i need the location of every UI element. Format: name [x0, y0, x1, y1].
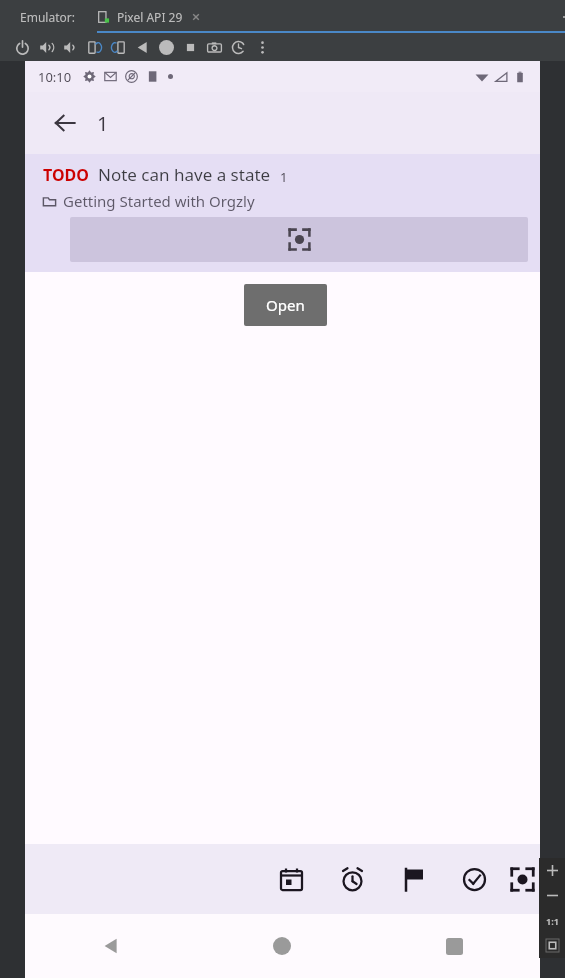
- staticText: TODO: [43, 164, 89, 186]
- button[interactable]: Home: [196, 914, 368, 978]
- staticText: 1: [97, 110, 109, 137]
- button[interactable]: Emulator control: [202, 35, 226, 59]
- button[interactable]: Fit to screen: [539, 933, 565, 958]
- button[interactable]: Open: [244, 284, 327, 326]
- button[interactable]: Emulator control: [10, 35, 34, 59]
- staticText: Note can have a state: [98, 163, 271, 186]
- button[interactable]: Focus note: [70, 217, 528, 262]
- button[interactable]: Back: [25, 914, 196, 978]
- button[interactable]: Emulator control: [154, 35, 178, 59]
- button[interactable]: TODO: [25, 154, 540, 272]
- staticText: Pixel API 29: [117, 9, 183, 25]
- button[interactable]: Back: [45, 103, 85, 143]
- button[interactable]: Emulator control: [178, 35, 202, 59]
- staticText: Getting Started with Orgzly: [63, 191, 255, 211]
- staticText: Emulator:: [20, 9, 75, 25]
- button[interactable]: Emulator control: [250, 35, 274, 59]
- button[interactable]: Emulator control: [226, 35, 250, 59]
- button[interactable]: Done: [444, 849, 505, 909]
- staticText: 1:1: [546, 915, 559, 927]
- staticText: 10:10: [38, 68, 72, 86]
- button[interactable]: Deadline: [322, 849, 383, 909]
- button[interactable]: Flag: [383, 849, 444, 909]
- button[interactable]: Schedule: [261, 849, 322, 909]
- button[interactable]: Emulator control: [130, 35, 154, 59]
- staticText: Open: [266, 295, 305, 315]
- button[interactable]: Emulator control: [106, 35, 130, 59]
- button[interactable]: Emulator control: [58, 35, 82, 59]
- button[interactable]: Emulator control: [82, 35, 106, 59]
- button[interactable]: Emulator control: [34, 35, 58, 59]
- button[interactable]: Actual size: [539, 908, 565, 933]
- staticText: 1: [280, 168, 288, 186]
- button[interactable]: Focus: [505, 849, 540, 909]
- button[interactable]: Zoom out: [539, 883, 565, 908]
- button[interactable]: Recents: [368, 914, 540, 978]
- button[interactable]: Zoom in: [539, 858, 565, 883]
